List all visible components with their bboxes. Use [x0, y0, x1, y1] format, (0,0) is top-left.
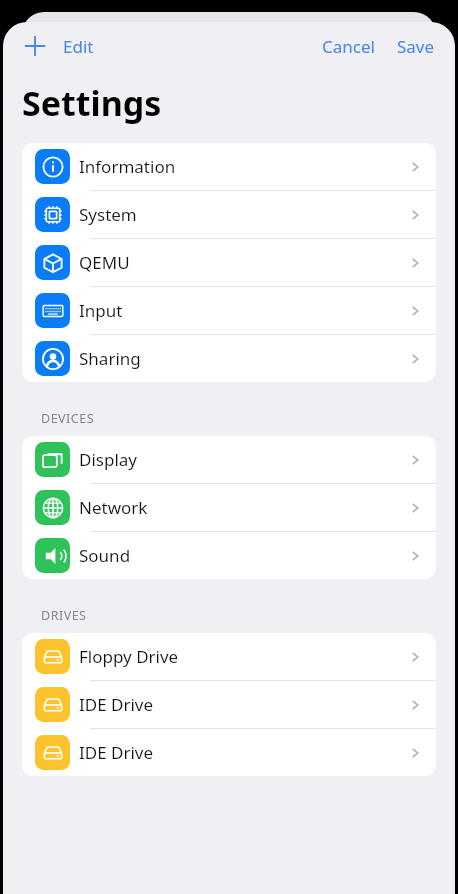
staticText: System	[79, 203, 408, 226]
staticText: DEVICES	[41, 410, 95, 427]
staticText: Information	[79, 155, 408, 178]
staticText: Save	[397, 35, 435, 58]
button[interactable]: Cancel	[314, 29, 383, 64]
staticText: IDE Drive	[79, 741, 408, 764]
staticText: QEMU	[79, 251, 408, 274]
button[interactable]: Input	[22, 287, 436, 334]
button[interactable]: System	[22, 191, 436, 238]
button[interactable]: Save	[391, 29, 441, 64]
button[interactable]: QEMU	[22, 239, 436, 286]
staticText: Settings	[22, 80, 162, 126]
staticText: Sharing	[79, 347, 408, 370]
staticText: IDE Drive	[79, 693, 408, 716]
button[interactable]: IDE Drive	[22, 729, 436, 776]
button[interactable]: Network	[22, 484, 436, 531]
staticText: Sound	[79, 544, 408, 567]
button[interactable]: Information	[22, 143, 436, 190]
staticText: Display	[79, 448, 408, 471]
staticText: Cancel	[322, 35, 375, 58]
button[interactable]: Sharing	[22, 335, 436, 382]
button[interactable]: Edit	[55, 29, 102, 64]
staticText: Input	[79, 299, 408, 322]
staticText: Edit	[63, 35, 94, 58]
button[interactable]: Add	[15, 26, 55, 66]
button[interactable]: Sound	[22, 532, 436, 579]
button[interactable]: IDE Drive	[22, 681, 436, 728]
staticText: Network	[79, 496, 408, 519]
button[interactable]: Display	[22, 436, 436, 483]
button[interactable]: Floppy Drive	[22, 633, 436, 680]
staticText: DRIVES	[41, 607, 87, 624]
staticText: Floppy Drive	[79, 645, 408, 668]
